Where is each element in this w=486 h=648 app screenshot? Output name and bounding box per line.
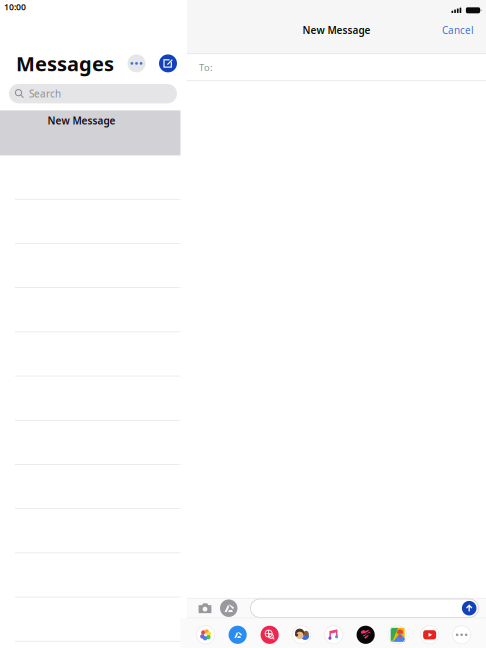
button[interactable]: Take photo [187,598,216,618]
staticText: Messages [16,50,114,77]
staticText: Search [29,87,61,100]
button[interactable]: Photos [196,626,215,644]
button[interactable]: More apps [452,626,471,644]
button[interactable]: Music [324,626,343,644]
button[interactable]: YouTube [420,626,439,644]
button[interactable]: Search [9,84,177,103]
staticText: To: [199,61,213,74]
button[interactable]: Apps [216,598,241,618]
button[interactable]: Fitness [356,626,375,644]
button[interactable]: Send [462,601,476,615]
staticText: New Message [302,23,370,37]
button[interactable]: New message [159,54,177,72]
button[interactable]: Image search [260,626,279,644]
button[interactable]: Cancel [433,17,486,43]
button[interactable]: Maps [388,626,407,644]
button[interactable]: Memoji [292,626,311,644]
button[interactable]: More options [127,54,145,72]
button[interactable]: New Message [0,110,187,155]
staticText: Cancel [442,23,474,37]
staticText: New Message [47,114,115,127]
staticText: 10:00 [4,1,26,13]
button[interactable]: App Store [228,626,247,644]
